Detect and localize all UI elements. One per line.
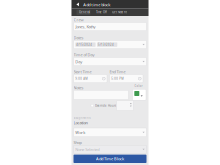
button[interactable]: 5:00 PM: [109, 74, 143, 83]
button[interactable]: General: [78, 9, 91, 16]
staticText: Override Hours: [95, 104, 116, 107]
button[interactable]: [73, 90, 128, 100]
staticText: Time Off: [96, 10, 107, 14]
button[interactable]: Get Next Fit: [111, 9, 128, 16]
button[interactable]: Day: [73, 57, 146, 66]
staticText: Time of Day: [73, 52, 94, 57]
staticText: 4/15/2024: [76, 43, 92, 46]
staticText: Start Time: [73, 69, 91, 74]
staticText: Location: [73, 120, 87, 125]
button[interactable]: 9:00 AM: [73, 74, 107, 83]
staticText: Get Next Fit: [112, 10, 127, 14]
staticText: Shop: [73, 140, 81, 145]
staticText: Add Time Block: [96, 156, 124, 161]
button[interactable]: Back: [75, 1, 81, 8]
staticText: Day: [75, 59, 82, 64]
staticText: Notes: [73, 85, 83, 90]
button[interactable]: Add Time Block: [73, 155, 146, 163]
staticText: Work: [75, 130, 85, 135]
button[interactable]: Jones, Kathy: [73, 22, 146, 31]
staticText: Crew: [73, 17, 83, 22]
button[interactable]: Override Hours: [90, 101, 116, 111]
staticText: Add time block: [83, 2, 110, 7]
staticText: End Time: [109, 69, 125, 74]
staticText: 5/13/2024: [98, 43, 114, 46]
staticText: 5:00 PM: [111, 77, 123, 80]
button[interactable]: Color: [132, 89, 146, 100]
button[interactable]: Time Off: [95, 9, 108, 16]
staticText: None Selected: [75, 147, 99, 152]
staticText: General: [79, 10, 90, 14]
staticText: Dates: [73, 35, 83, 40]
button[interactable]: None Selected: [73, 145, 146, 154]
staticText: 9:00 AM: [75, 77, 87, 80]
staticText: Jones, Kathy: [75, 24, 95, 29]
staticText: Color: [134, 84, 142, 88]
button[interactable]: Work: [73, 128, 146, 137]
staticText: Assignments: [73, 116, 90, 120]
